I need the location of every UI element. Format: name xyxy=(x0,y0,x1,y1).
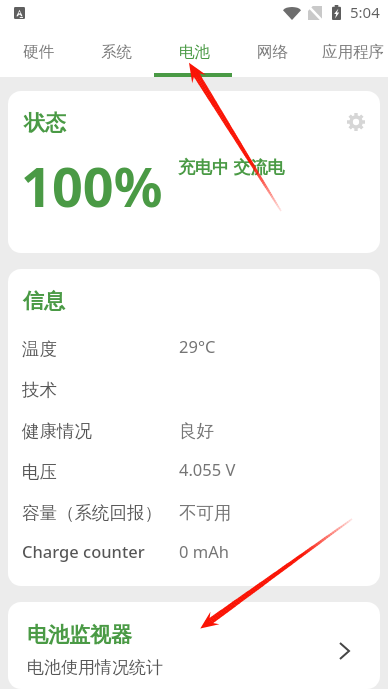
button[interactable]: Settings xyxy=(344,110,368,134)
staticText: 电压 xyxy=(22,461,57,483)
button[interactable]: 电池 xyxy=(154,26,232,77)
staticText: 技术 xyxy=(22,379,57,401)
staticText: 温度 xyxy=(22,338,57,360)
other: Open battery monitor xyxy=(339,642,350,660)
staticText: Charge counter xyxy=(22,540,145,562)
staticText: 充电中 交流电 xyxy=(178,155,285,178)
staticText: 0 mAh xyxy=(179,540,229,562)
button[interactable]: 应用程序 xyxy=(310,26,388,77)
staticText: 29°C xyxy=(179,335,216,357)
staticText: 电池 xyxy=(179,42,210,62)
staticText: 硬件 xyxy=(23,42,54,62)
staticText: 100% xyxy=(21,149,163,223)
staticText: 不可用 xyxy=(179,502,232,524)
staticText: 容量（系统回报） xyxy=(22,502,162,524)
staticText: 网络 xyxy=(257,42,288,62)
staticText: 应用程序 xyxy=(322,42,384,62)
button[interactable]: 电池监视器 xyxy=(8,602,380,689)
staticText: 5:04 xyxy=(350,2,380,22)
staticText: 4.055 V xyxy=(179,458,236,480)
staticText: 健康情况 xyxy=(22,420,92,442)
button[interactable]: 硬件 xyxy=(0,26,77,77)
staticText: 电池监视器 xyxy=(27,622,132,648)
staticText: 信息 xyxy=(23,288,65,314)
staticText: 系统 xyxy=(101,42,132,62)
staticText: 电池使用情况统计 xyxy=(27,657,163,678)
staticText: 良好 xyxy=(179,420,214,442)
staticText: 状态 xyxy=(24,110,66,136)
button[interactable]: 网络 xyxy=(232,26,310,77)
button[interactable]: 系统 xyxy=(77,26,154,77)
